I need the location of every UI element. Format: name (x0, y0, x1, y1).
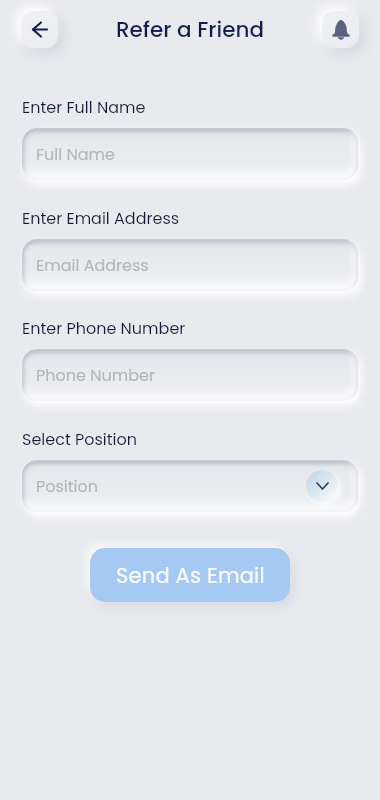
staticText: Email Address (36, 254, 149, 276)
staticText: Enter Full Name (22, 96, 146, 118)
button[interactable]: Notifications (322, 11, 359, 48)
button[interactable]: Phone Number (22, 349, 358, 401)
staticText: Phone Number (36, 364, 155, 386)
staticText: Enter Phone Number (22, 317, 186, 339)
button[interactable]: Send As Email (90, 548, 290, 602)
button[interactable]: Position (22, 460, 358, 512)
button[interactable]: Email Address (22, 239, 358, 291)
button[interactable]: Back (21, 11, 58, 48)
staticText: Enter Email Address (22, 207, 180, 229)
staticText: Select Position (22, 428, 138, 450)
staticText: Position (36, 475, 99, 497)
staticText: Refer a Friend (0, 14, 380, 44)
button[interactable]: Full Name (22, 128, 358, 180)
staticText: Full Name (36, 143, 115, 165)
staticText: Send As Email (116, 561, 265, 590)
